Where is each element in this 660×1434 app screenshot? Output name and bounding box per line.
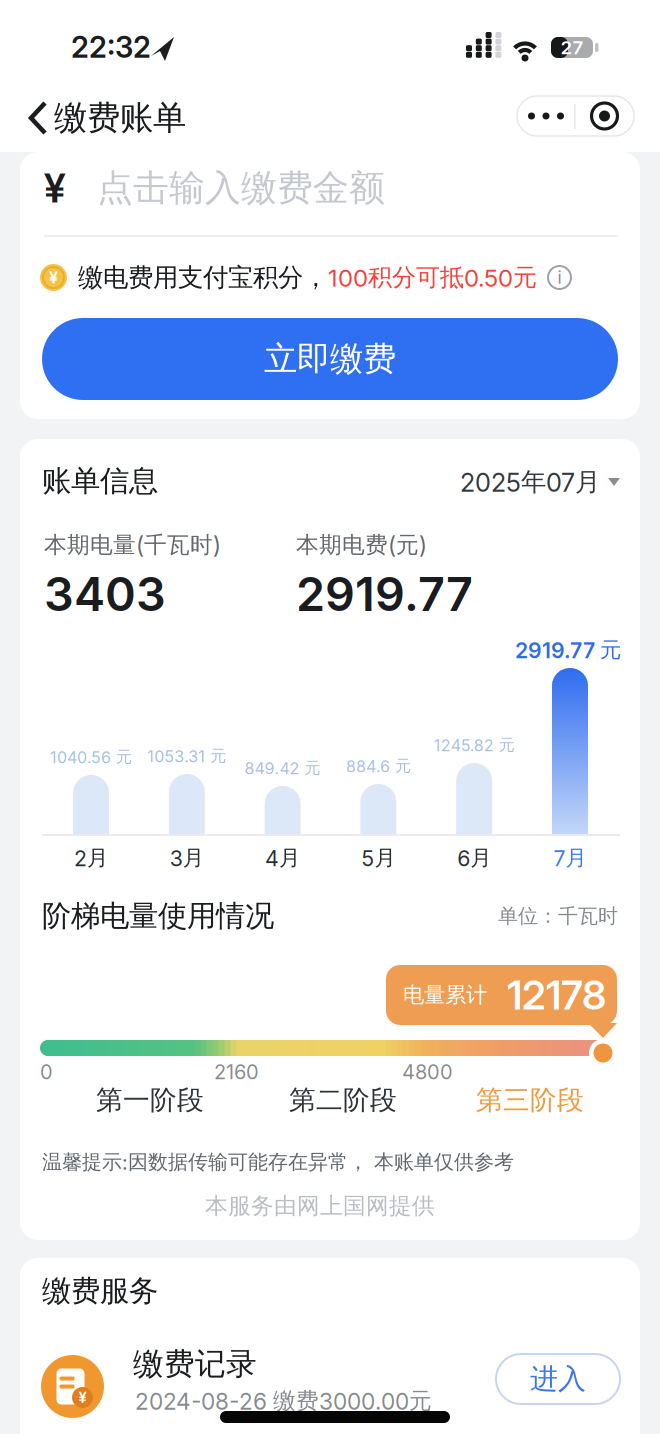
staticText: 12178 xyxy=(507,971,606,1019)
staticText: 缴电费用支付宝积分， xyxy=(78,262,328,293)
staticText: 0 xyxy=(40,1060,53,1084)
staticText: 22:32 xyxy=(71,30,151,64)
staticText: 7月 xyxy=(553,845,586,871)
staticText: 2025年07月 xyxy=(460,466,600,497)
staticText: 2月 xyxy=(74,845,108,871)
staticText: 2919.77 xyxy=(296,566,473,622)
staticText: 缴费记录 xyxy=(133,1345,257,1383)
staticText: 缴费账单 xyxy=(54,97,186,138)
staticText: 6月 xyxy=(457,845,491,871)
staticText: 第二阶段 xyxy=(289,1084,397,1116)
staticText: 进入 xyxy=(530,1362,586,1396)
staticText: 本期电费(元) xyxy=(296,531,427,559)
staticText: ¥ xyxy=(49,268,58,287)
staticText: ¥ xyxy=(78,1389,86,1406)
button[interactable]: 进入缴费记录 xyxy=(496,1354,620,1404)
button[interactable]: More xyxy=(517,96,575,136)
staticText: 阶梯电量使用情况 xyxy=(42,898,274,934)
staticText: 点击输入缴费金额 xyxy=(97,166,385,210)
staticText: 电量累计 xyxy=(403,982,487,1008)
staticText: 5月 xyxy=(361,845,395,871)
staticText: 第三阶段 xyxy=(476,1084,584,1116)
staticText: 100积分可抵0.50元 xyxy=(328,263,537,292)
staticText: 27 xyxy=(560,36,583,58)
staticText: i xyxy=(557,267,561,288)
staticText: 账单信息 xyxy=(42,463,158,499)
button[interactable]: Back xyxy=(28,101,48,135)
staticText: 2919.77 元 xyxy=(515,637,621,663)
button[interactable]: 缴费记录 xyxy=(41,1342,481,1432)
staticText: 3403 xyxy=(44,566,166,622)
staticText: ¥ xyxy=(44,164,66,212)
staticText: 本服务由网上国网提供 xyxy=(205,1192,435,1220)
staticText: 缴费服务 xyxy=(42,1273,158,1309)
button[interactable]: 积分说明 xyxy=(547,265,572,290)
staticText: 849.42 元 xyxy=(245,758,321,778)
staticText: 3月 xyxy=(170,845,204,871)
button[interactable]: 选择月份 xyxy=(460,466,620,497)
staticText: 1053.31 元 xyxy=(147,746,226,766)
staticText: 2160 xyxy=(214,1060,259,1084)
staticText: 884.6 元 xyxy=(346,756,411,776)
staticText: 1245.82 元 xyxy=(434,735,515,755)
staticText: 第一阶段 xyxy=(96,1084,204,1116)
staticText: 温馨提示:因数据传输可能存在异常， 本账单仅供参考 xyxy=(42,1150,514,1174)
staticText: 4800 xyxy=(402,1060,453,1084)
button[interactable]: Close xyxy=(575,96,634,136)
staticText: 2024-08-26 缴费3000.00元 xyxy=(135,1387,432,1415)
button[interactable]: 立即缴费 xyxy=(42,318,618,400)
staticText: 立即缴费 xyxy=(264,338,396,379)
staticText: 4月 xyxy=(265,845,300,871)
staticText: 本期电量(千瓦时) xyxy=(44,531,221,559)
staticText: 1040.56 元 xyxy=(50,747,132,767)
button[interactable]: 输入缴费金额 xyxy=(44,160,620,216)
staticText: 单位：千瓦时 xyxy=(498,904,618,928)
